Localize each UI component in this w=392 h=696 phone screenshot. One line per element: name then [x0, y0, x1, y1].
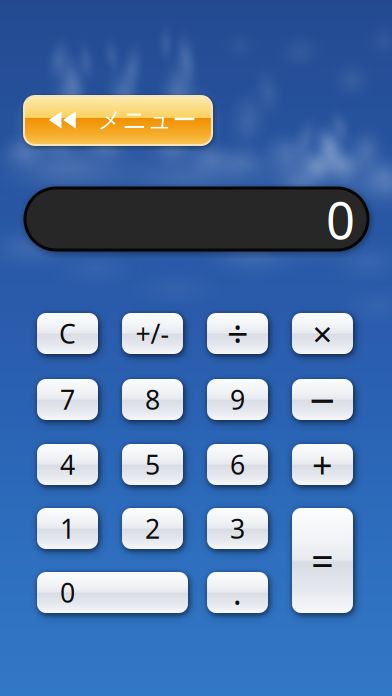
staticText: ×: [312, 310, 332, 356]
button[interactable]: 5: [122, 444, 183, 485]
staticText: +/-: [135, 316, 169, 351]
button[interactable]: ×: [292, 313, 353, 354]
button[interactable]: C: [37, 313, 98, 354]
button[interactable]: 8: [122, 379, 183, 420]
staticText: +: [312, 441, 333, 488]
staticText: 4: [60, 447, 75, 482]
button[interactable]: =: [292, 508, 353, 613]
staticText: 5: [145, 447, 160, 482]
staticText: ÷: [227, 309, 248, 358]
button[interactable]: 4: [37, 444, 98, 485]
button[interactable]: .: [207, 572, 268, 613]
staticText: 1: [60, 511, 75, 546]
button[interactable]: 6: [207, 444, 268, 485]
button[interactable]: 3: [207, 508, 268, 549]
staticText: 0: [60, 575, 75, 610]
button[interactable]: 2: [122, 508, 183, 549]
staticText: −: [309, 369, 335, 430]
button[interactable]: 1: [37, 508, 98, 549]
button[interactable]: +/-: [122, 313, 183, 354]
staticText: 7: [60, 382, 75, 417]
staticText: 3: [230, 511, 245, 546]
button[interactable]: −: [292, 379, 353, 420]
button[interactable]: 7: [37, 379, 98, 420]
staticText: 8: [145, 382, 160, 417]
button[interactable]: +: [292, 444, 353, 485]
staticText: .: [233, 571, 242, 614]
staticText: メニュー: [97, 105, 196, 135]
staticText: 9: [230, 382, 245, 417]
staticText: 0: [326, 186, 355, 253]
staticText: 6: [230, 447, 245, 482]
button[interactable]: ÷: [207, 313, 268, 354]
button[interactable]: 0: [37, 572, 188, 613]
button[interactable]: メニュー: [24, 96, 212, 145]
staticText: =: [311, 534, 334, 587]
staticText: C: [59, 316, 76, 351]
staticText: 2: [145, 511, 160, 546]
button[interactable]: 9: [207, 379, 268, 420]
